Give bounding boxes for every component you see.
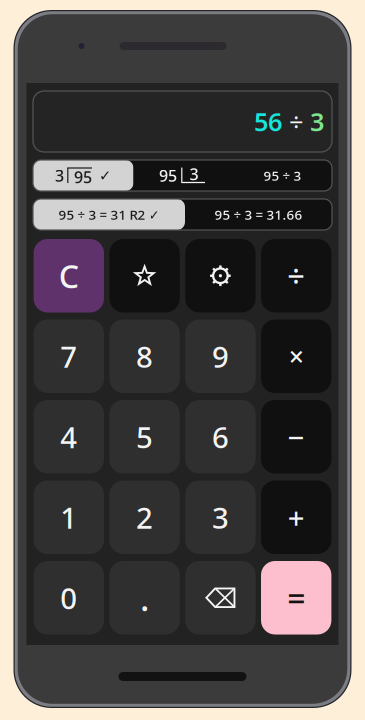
button[interactable]: = — [261, 561, 331, 634]
button[interactable]: Settings — [185, 239, 256, 312]
button[interactable]: 2 — [109, 480, 180, 554]
staticText: 9 — [212, 337, 229, 376]
button[interactable]: 95 ÷ 3 = 31 R2 ✓ — [33, 199, 185, 230]
button[interactable]: 4 — [34, 400, 104, 473]
staticText: 6 — [212, 417, 229, 456]
button[interactable]: 6 — [185, 400, 256, 473]
staticText: 95 — [159, 165, 177, 186]
staticText: = — [287, 576, 305, 619]
staticText: 0 — [60, 578, 77, 617]
staticText: 2 — [136, 498, 153, 537]
staticText: ÷ — [287, 255, 305, 296]
staticText: ✓ — [99, 167, 111, 184]
staticText: 3 — [212, 498, 229, 537]
button[interactable]: 8 — [109, 319, 180, 393]
button[interactable]: Favorite — [109, 239, 180, 312]
button[interactable]: 7 — [34, 319, 104, 393]
button[interactable]: . — [109, 561, 180, 634]
staticText: 4 — [60, 417, 77, 456]
staticText: C — [59, 254, 79, 297]
staticText: 3 — [189, 163, 198, 185]
button[interactable]: 5 — [109, 400, 180, 473]
staticText: − — [288, 417, 305, 456]
button[interactable]: 95 — [133, 160, 232, 191]
staticText: 3 — [310, 105, 324, 138]
button[interactable]: 3 — [32, 160, 133, 191]
staticText: + — [288, 498, 305, 537]
staticText: 5 — [136, 417, 153, 456]
staticText: 95 ÷ 3 = 31.66 — [214, 206, 302, 223]
button[interactable]: − — [261, 400, 331, 473]
button[interactable]: Delete — [185, 561, 256, 634]
button[interactable]: + — [261, 480, 331, 554]
button[interactable]: 9 — [185, 319, 256, 393]
staticText: 3 — [55, 165, 64, 186]
staticText: 95 — [74, 166, 92, 188]
staticText: × — [289, 338, 304, 374]
button[interactable]: 95 ÷ 3 = 31.66 — [185, 199, 332, 230]
staticText: ÷ — [282, 105, 310, 138]
button[interactable]: 0 — [34, 561, 104, 634]
button[interactable]: × — [261, 319, 331, 393]
button[interactable]: 1 — [34, 480, 104, 554]
button[interactable]: 3 — [185, 480, 256, 554]
staticText: . — [140, 575, 149, 621]
staticText: 8 — [136, 337, 153, 376]
button[interactable]: ÷ — [261, 239, 331, 312]
staticText: 95 ÷ 3 — [263, 167, 301, 184]
staticText: 7 — [60, 337, 77, 376]
button[interactable]: C — [34, 239, 104, 312]
button[interactable]: 95 ÷ 3 — [232, 160, 332, 191]
staticText: 56 — [254, 105, 282, 138]
staticText: 1 — [60, 498, 77, 537]
staticText: 95 ÷ 3 = 31 R2 ✓ — [58, 206, 159, 223]
